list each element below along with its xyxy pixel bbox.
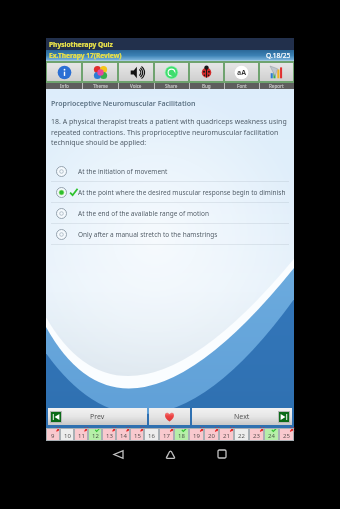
button[interactable]: 24 — [264, 428, 279, 441]
button[interactable]: Prev — [48, 408, 147, 425]
button[interactable]: 12 — [88, 428, 102, 441]
staticText: 14 — [120, 432, 127, 440]
button[interactable]: 15 — [130, 428, 144, 441]
staticText: Report — [269, 83, 284, 89]
button[interactable]: Info — [47, 63, 81, 81]
button[interactable]: Report — [260, 63, 293, 81]
staticText: At the initiation of movement — [78, 167, 168, 176]
staticText: aA — [237, 68, 247, 78]
button[interactable]: Font — [225, 63, 258, 81]
button[interactable]: At the point where the desired muscular … — [51, 182, 289, 203]
button[interactable]: Theme — [83, 63, 117, 81]
staticText: 23 — [253, 432, 260, 440]
staticText: 22 — [238, 432, 245, 440]
staticText: Bug — [202, 83, 211, 89]
button[interactable]: 14 — [116, 428, 130, 441]
staticText: Proprioceptive Neuromuscular Facilitatio… — [51, 99, 196, 109]
button[interactable]: Share — [155, 63, 188, 81]
button[interactable]: 21 — [219, 428, 234, 441]
button[interactable]: 19 — [189, 428, 204, 441]
staticText: 18. A physical therapist treats a patien… — [51, 117, 289, 147]
button[interactable]: 11 — [74, 428, 88, 441]
staticText: Prev — [90, 412, 105, 422]
button[interactable]: Back — [103, 442, 133, 466]
staticText: 20 — [208, 432, 215, 440]
button[interactable]: 17 — [159, 428, 174, 441]
button[interactable]: 22 — [234, 428, 249, 441]
staticText: 13 — [106, 432, 113, 440]
button[interactable]: Favorite — [149, 408, 190, 425]
staticText: 19 — [193, 432, 200, 440]
staticText: At the end of the available range of mot… — [78, 209, 209, 218]
staticText: 10 — [64, 432, 71, 440]
button[interactable]: Bug — [190, 63, 223, 81]
button[interactable]: 13 — [102, 428, 116, 441]
staticText: 17 — [163, 432, 170, 440]
staticText: Info — [60, 83, 69, 89]
staticText: 21 — [223, 432, 230, 440]
button[interactable]: 18 — [174, 428, 189, 441]
staticText: Q.18/25 — [266, 51, 291, 60]
button[interactable]: 23 — [249, 428, 264, 441]
button[interactable]: Home — [155, 442, 185, 466]
staticText: 24 — [268, 432, 275, 440]
staticText: 16 — [148, 432, 155, 440]
button[interactable]: 10 — [60, 428, 74, 441]
staticText: Ex.Therapy 17(Review) — [49, 51, 122, 60]
button[interactable]: At the end of the available range of mot… — [51, 203, 289, 224]
staticText: Theme — [93, 83, 108, 89]
button[interactable]: 25 — [279, 428, 294, 441]
staticText: At the point where the desired muscular … — [78, 188, 286, 197]
button[interactable]: At the initiation of movement — [51, 161, 289, 182]
staticText: Font — [237, 83, 247, 89]
button[interactable]: Only after a manual stretch to the hamst… — [51, 224, 289, 245]
button[interactable]: Next — [192, 408, 292, 425]
button[interactable]: 16 — [144, 428, 159, 441]
button[interactable]: 20 — [204, 428, 219, 441]
button[interactable]: Recents — [207, 442, 237, 466]
staticText: 25 — [283, 432, 290, 440]
staticText: 15 — [134, 432, 141, 440]
staticText: 11 — [78, 432, 85, 440]
staticText: Only after a manual stretch to the hamst… — [78, 230, 218, 239]
staticText: 9 — [51, 432, 55, 440]
staticText: 18 — [178, 432, 185, 440]
staticText: Physiotherapy Quiz — [49, 40, 113, 49]
staticText: Next — [234, 412, 250, 422]
button[interactable]: Voice — [119, 63, 153, 81]
staticText: Share — [165, 83, 178, 89]
button[interactable]: 9 — [46, 428, 60, 441]
staticText: Voice — [130, 83, 142, 89]
staticText: 12 — [92, 432, 99, 440]
